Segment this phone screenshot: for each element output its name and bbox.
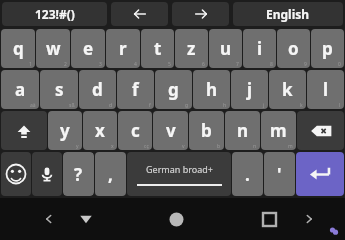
staticText: h [223, 102, 227, 109]
button[interactable]: i [243, 29, 276, 68]
staticText: 9 [304, 61, 307, 68]
staticText: j [263, 102, 265, 109]
staticText: n [237, 119, 249, 142]
button[interactable]: Next [291, 198, 327, 240]
button[interactable]: l [307, 70, 344, 109]
staticText: f [149, 102, 151, 109]
staticText: 7 [236, 61, 239, 68]
staticText: 5 [168, 61, 171, 68]
staticText: 2 [64, 61, 67, 68]
staticText: v [182, 143, 185, 150]
button[interactable]: w [36, 29, 70, 68]
button[interactable]: b [189, 111, 224, 150]
button[interactable]: n [225, 111, 260, 150]
button[interactable]: a [1, 70, 39, 109]
staticText: k [300, 102, 303, 109]
staticText: b [201, 119, 212, 142]
button[interactable]: Space, German broad+ [127, 152, 231, 196]
button[interactable]: ? [63, 152, 94, 196]
button[interactable]: g [155, 70, 192, 109]
staticText: . [245, 163, 250, 186]
button[interactable]: Move cursor left [111, 2, 168, 26]
staticText: x [111, 143, 114, 150]
staticText: g [185, 102, 189, 109]
button[interactable]: Recent apps [248, 198, 291, 240]
staticText: 3 [99, 61, 102, 68]
staticText: z [187, 37, 196, 60]
staticText: x [95, 119, 105, 142]
staticText: e [83, 37, 94, 60]
button[interactable]: , [95, 152, 126, 196]
button[interactable]: ' [264, 152, 295, 196]
staticText: y [76, 143, 79, 150]
button[interactable]: c [118, 111, 152, 150]
button[interactable]: Symbols 123!#() [2, 2, 107, 26]
staticText: d [109, 102, 113, 109]
button[interactable]: y [48, 111, 82, 150]
button[interactable]: p [311, 29, 344, 68]
button[interactable]: h [193, 70, 230, 109]
button[interactable]: z [175, 29, 208, 68]
button[interactable]: r [106, 29, 140, 68]
button[interactable]: English [233, 2, 343, 26]
button[interactable]: d [79, 70, 116, 109]
staticText: g [168, 78, 179, 101]
staticText: ? [74, 163, 83, 186]
staticText: k [282, 78, 293, 101]
button[interactable]: Enter [296, 152, 344, 196]
staticText: i [257, 37, 263, 60]
button[interactable]: k [269, 70, 306, 109]
staticText: u [220, 37, 232, 60]
staticText: a [15, 78, 26, 101]
button[interactable]: j [231, 70, 268, 109]
button[interactable]: Previous [31, 198, 66, 240]
staticText: v [166, 119, 176, 142]
button[interactable]: o [277, 29, 310, 68]
staticText: b [217, 143, 221, 150]
staticText: ' [277, 163, 282, 186]
staticText: h [206, 78, 218, 101]
staticText: aä [30, 102, 36, 109]
button[interactable]: u [209, 29, 242, 68]
button[interactable]: q [1, 29, 35, 68]
button[interactable]: Move cursor right [172, 2, 229, 26]
button[interactable]: Backspace [297, 111, 344, 150]
button[interactable]: e [71, 29, 105, 68]
button[interactable]: Emoji [1, 152, 31, 196]
button[interactable]: m [261, 111, 296, 150]
button[interactable]: Shift [1, 111, 47, 150]
button[interactable]: Change keyboard [329, 226, 339, 236]
staticText: cç [144, 143, 149, 150]
staticText: y [60, 119, 70, 142]
staticText: , [108, 163, 113, 186]
staticText: m [270, 119, 287, 142]
button[interactable]: x [83, 111, 117, 150]
staticText: 1 [29, 61, 32, 68]
staticText: w [46, 37, 61, 60]
button[interactable]: t [141, 29, 174, 68]
staticText: German broad+ [146, 163, 213, 175]
staticText: t [154, 37, 162, 60]
staticText: English [266, 6, 310, 22]
staticText: 123!#() [35, 6, 75, 22]
button[interactable]: v [153, 111, 188, 150]
staticText: 0 [338, 61, 341, 68]
staticText: l [339, 102, 341, 109]
button[interactable]: Back [66, 198, 105, 240]
staticText: o [288, 37, 299, 60]
staticText: 6 [202, 61, 205, 68]
staticText: c [131, 119, 140, 142]
button[interactable]: f [117, 70, 154, 109]
staticText: r [119, 37, 127, 60]
staticText: sß [69, 102, 75, 109]
button[interactable]: s [40, 70, 78, 109]
button[interactable]: . [232, 152, 263, 196]
staticText: d [92, 78, 103, 101]
staticText: s [55, 78, 64, 101]
staticText: m [288, 143, 293, 150]
staticText: l [323, 78, 329, 101]
button[interactable]: Home [155, 198, 198, 240]
staticText: n [253, 143, 257, 150]
staticText: f [132, 78, 139, 101]
button[interactable]: Voice input [32, 152, 62, 196]
